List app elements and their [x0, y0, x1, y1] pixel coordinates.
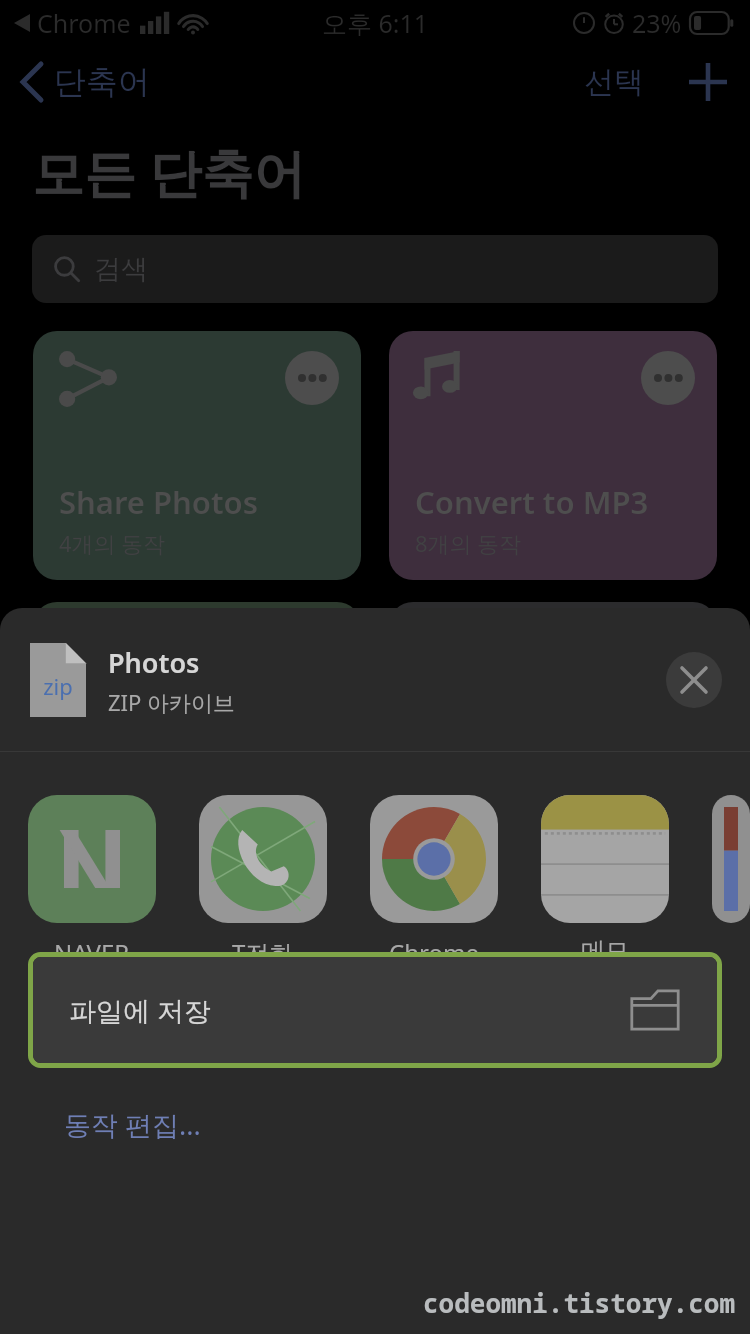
button[interactable]: 더 보기	[285, 351, 339, 405]
staticText: 모든 단축어	[32, 136, 306, 207]
button[interactable]	[33, 602, 361, 662]
staticText: 동작 편집...	[64, 1106, 201, 1143]
staticText: Share Photos	[59, 481, 258, 523]
button[interactable]: 추가	[684, 58, 732, 106]
button[interactable]: 검색	[32, 235, 718, 303]
staticText: 선택	[584, 63, 644, 101]
staticText: 파일에 저장	[69, 992, 212, 1029]
button[interactable]: 메모	[541, 795, 669, 952]
staticText: 8개의 동작	[415, 528, 522, 558]
staticText: NAVER	[54, 936, 130, 952]
staticText: Chrome	[37, 6, 131, 40]
staticText: Chrome	[389, 936, 479, 952]
button[interactable]: Chrome	[370, 795, 498, 952]
button[interactable]: 더 보기	[641, 351, 695, 405]
button[interactable]: 더 보기	[33, 331, 361, 580]
button[interactable]	[389, 602, 717, 662]
staticText: T전화	[232, 936, 294, 952]
staticText: codeomni.tistory.com	[423, 1285, 736, 1320]
staticText: ZIP 아카이브	[108, 687, 236, 717]
staticText: 오후 6:11	[322, 6, 429, 40]
staticText: Convert to MP3	[415, 481, 649, 523]
button[interactable]: 닫기	[666, 652, 722, 708]
staticText: 단축어	[54, 62, 150, 102]
button[interactable]: T전화	[199, 795, 327, 952]
staticText: Photos	[108, 644, 200, 681]
staticText: 검색	[94, 252, 148, 286]
button[interactable]: 단축어	[12, 56, 160, 108]
staticText: 메모	[581, 936, 629, 952]
button[interactable]: 더 보기	[389, 331, 717, 580]
button[interactable]: NAVER	[28, 795, 156, 952]
staticText: 4개의 동작	[59, 528, 166, 558]
button[interactable]: 파일에 저장	[33, 957, 717, 1063]
button[interactable]: 선택	[574, 57, 654, 107]
staticText: zip	[43, 671, 73, 701]
staticText: 23%	[632, 6, 682, 40]
button[interactable]: 동작 편집...	[28, 1096, 237, 1153]
